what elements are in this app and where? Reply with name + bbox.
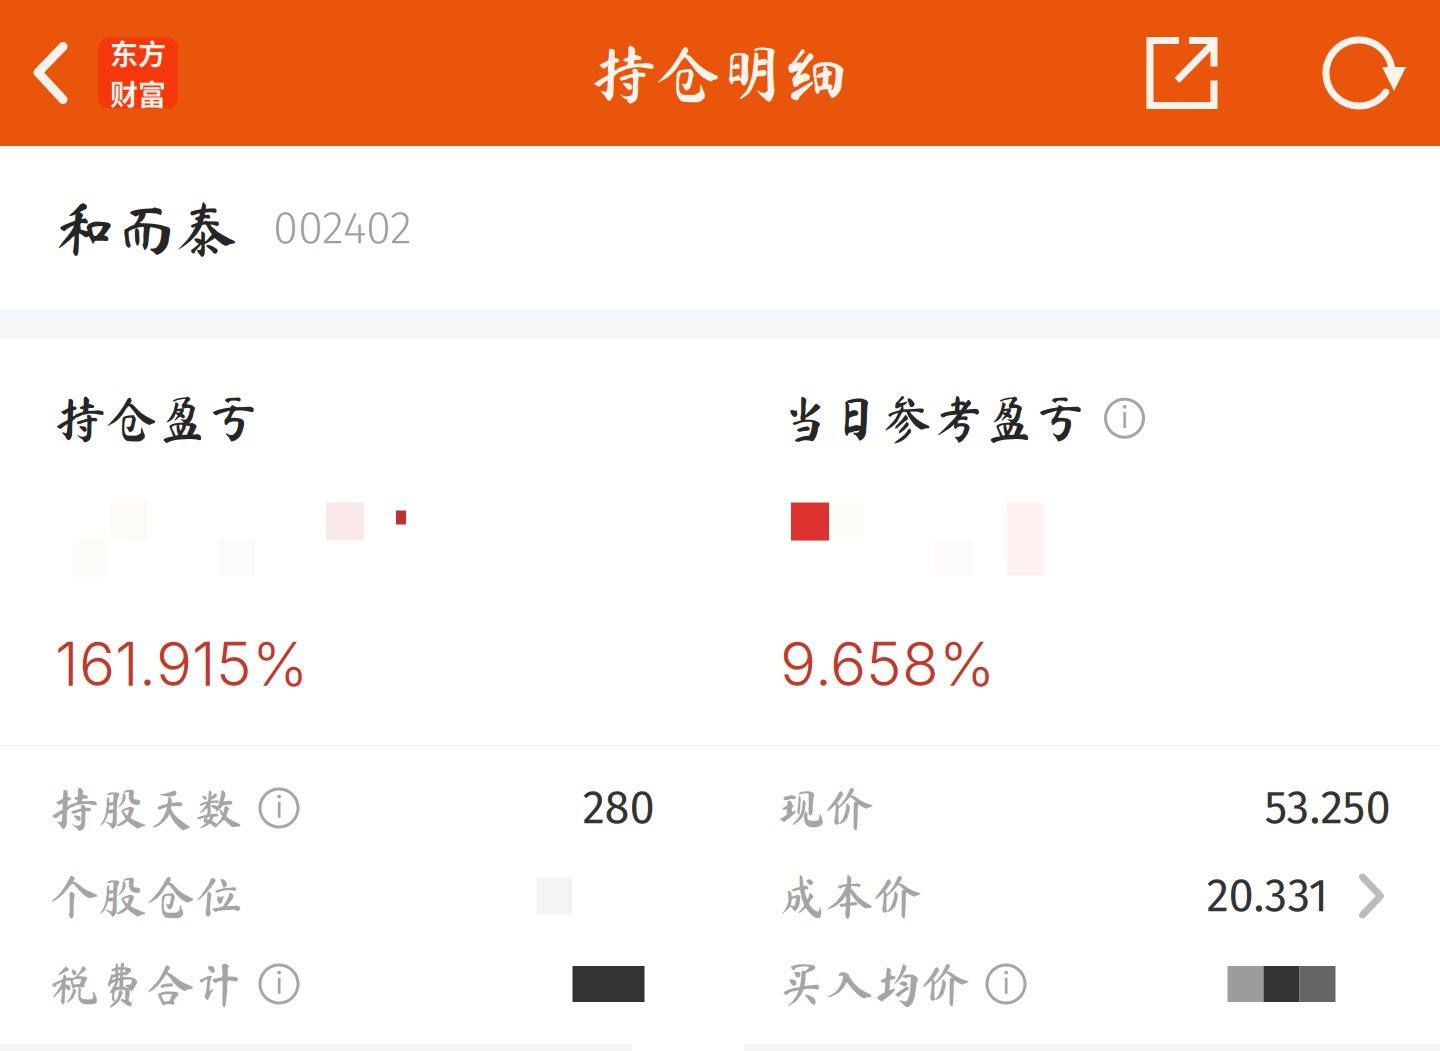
staticText: 20.331 [1206,869,1328,923]
staticText: 持股天数 [50,784,242,832]
staticText: i [275,966,283,1002]
staticText: 和而泰 [54,197,237,259]
staticText: 税费合计 [50,960,242,1008]
button[interactable]: Back [0,0,198,146]
staticText: 280 [582,781,654,835]
staticText: 持仓明细 [592,41,848,105]
staticText: i [1002,966,1010,1002]
staticText: 53.250 [1264,781,1390,835]
staticText: 持仓盈亏 [55,393,259,444]
button[interactable]: Share [1076,0,1288,146]
staticText: i [1120,401,1128,436]
staticText: 个股仓位 [50,872,242,920]
button[interactable]: Refresh [1288,0,1440,146]
staticText: 002402 [273,201,412,255]
staticText: 当日参考盈亏 [780,393,1086,444]
staticText: 161.915% [55,627,308,700]
staticText: 9.658% [780,627,995,700]
staticText: 买入均价 [777,960,969,1008]
staticText: 成本价 [777,872,921,920]
staticText: 现价 [777,784,873,832]
staticText: 东方 [110,32,166,73]
staticText: i [275,790,283,826]
staticText: 财富 [110,73,166,113]
